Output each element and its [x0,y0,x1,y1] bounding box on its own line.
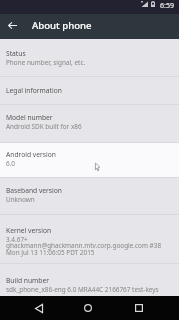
staticText: Baseband version [6,186,62,195]
staticText: sdk_phone_x86-eng 6.0 MRA44C 2166767 tes… [6,285,159,294]
staticText: 3.4.67+ ghackmann@ghackmann.mtv.corp.goo… [6,235,162,257]
staticText: Legal information [6,86,62,95]
staticText: Android SDK built for x86 [6,122,82,131]
button[interactable]: Build number [0,264,179,296]
staticText: 6:59 [160,1,174,11]
staticText: Unknown [6,195,35,204]
button[interactable]: Model number [0,105,179,142]
button[interactable]: Status [0,39,179,76]
staticText: About phone [32,19,92,32]
staticText: Android version [6,150,56,159]
staticText: Status [6,49,26,58]
button[interactable]: Baseband version [0,178,179,214]
button[interactable]: Navigate up [4,17,20,33]
button[interactable]: Android version [0,143,179,177]
staticText: Kernel version [6,226,52,235]
staticText: Model number [6,113,53,122]
button[interactable]: Kernel version [0,215,179,263]
button[interactable]: Legal information [0,77,179,104]
staticText: Build number [6,276,49,285]
button[interactable]: Back [27,296,51,320]
button[interactable]: Home [76,296,100,320]
button[interactable]: Recent apps [127,296,151,320]
staticText: 6.0 [6,159,16,168]
staticText: Phone number, signal, etc. [6,58,86,67]
